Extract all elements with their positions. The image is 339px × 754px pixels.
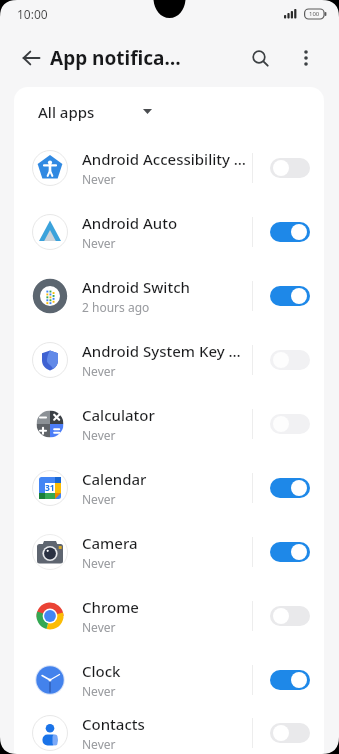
- staticText: Android Auto: [82, 213, 178, 233]
- staticText: Android Accessibility …: [82, 149, 246, 169]
- button[interactable]: Android Accessibility …: [14, 136, 324, 200]
- staticText: Camera: [82, 533, 138, 553]
- staticText: Android System Key …: [82, 341, 241, 361]
- button[interactable]: Android System Key …: [14, 328, 324, 392]
- staticText: Calculator: [82, 405, 155, 425]
- button[interactable]: Android Auto: [14, 200, 324, 264]
- staticText: 10:00: [17, 6, 48, 22]
- staticText: Never: [82, 363, 116, 379]
- button[interactable]: Clock: [14, 648, 324, 712]
- button[interactable]: [270, 158, 310, 178]
- button[interactable]: [270, 222, 310, 242]
- staticText: Chrome: [82, 597, 139, 617]
- staticText: Contacts: [82, 714, 145, 734]
- button[interactable]: [270, 670, 310, 690]
- staticText: Never: [82, 427, 116, 443]
- staticText: Never: [82, 736, 116, 752]
- button[interactable]: [270, 542, 310, 562]
- staticText: Never: [82, 619, 116, 635]
- staticText: App notifica…: [50, 45, 181, 71]
- button[interactable]: Android Switch: [14, 264, 324, 328]
- staticText: 100: [309, 10, 320, 18]
- staticText: Android Switch: [82, 277, 190, 297]
- button[interactable]: Contacts: [14, 712, 324, 754]
- staticText: Clock: [82, 661, 121, 681]
- button[interactable]: [270, 478, 310, 498]
- staticText: Never: [82, 171, 116, 187]
- button[interactable]: [293, 45, 319, 71]
- button[interactable]: [270, 350, 310, 370]
- button[interactable]: All apps: [14, 87, 324, 136]
- button[interactable]: [19, 46, 43, 70]
- staticText: 31: [45, 482, 55, 494]
- button[interactable]: [270, 286, 310, 306]
- button[interactable]: [270, 606, 310, 626]
- button[interactable]: Chrome: [14, 584, 324, 648]
- staticText: 2 hours ago: [82, 299, 150, 315]
- staticText: Never: [82, 235, 116, 251]
- staticText: All apps: [38, 102, 95, 122]
- staticText: Never: [82, 491, 116, 507]
- staticText: Calendar: [82, 469, 147, 489]
- staticText: Never: [82, 555, 116, 571]
- button[interactable]: Camera: [14, 520, 324, 584]
- button[interactable]: [244, 42, 276, 74]
- button[interactable]: [270, 414, 310, 434]
- button[interactable]: 31: [14, 456, 324, 520]
- staticText: Never: [82, 683, 116, 699]
- button[interactable]: Calculator: [14, 392, 324, 456]
- button[interactable]: [270, 723, 310, 743]
